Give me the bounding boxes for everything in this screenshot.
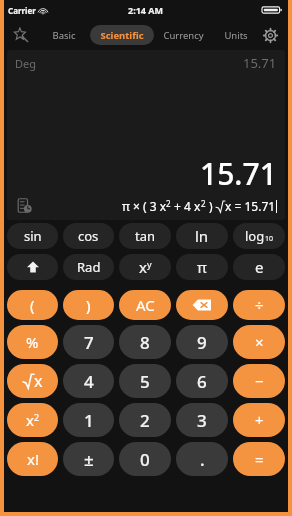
staticText: 2 [166,198,171,209]
staticText: 6 [197,370,207,393]
staticText: Currency [163,29,204,42]
button[interactable]: 1 [63,403,114,437]
button[interactable]: Shift [7,254,58,280]
button[interactable]: 8 [119,325,171,359]
button[interactable]: sin [7,223,58,249]
staticText: . [200,448,205,471]
staticText: x [26,410,34,430]
button[interactable]: Settings [258,23,282,47]
button[interactable]: x [7,403,58,437]
button[interactable]: AC [119,290,171,320]
staticText: 2 [34,411,40,423]
staticText: 1 [84,409,94,432]
button[interactable]: 7 [63,325,114,359]
button[interactable]: x! [7,442,58,476]
staticText: cos [78,227,99,245]
button[interactable]: ÷ [233,290,285,320]
staticText: 15.71 [243,54,277,72]
staticText: 10 [265,234,274,244]
button[interactable]: ln [176,223,228,249]
staticText: 5 [140,370,150,393]
button[interactable]: 0 [119,442,171,476]
button[interactable]: 6 [176,364,228,398]
button[interactable]: e [233,254,285,280]
staticText: ( [30,295,35,315]
button[interactable]: Magic [10,24,32,46]
button[interactable]: ) [63,290,114,320]
staticText: Carrier [8,5,36,16]
staticText: + 4 x [171,198,201,214]
button[interactable]: ( [7,290,58,320]
staticText: y [147,258,152,270]
staticText: ÷ [255,295,264,315]
button[interactable]: % [7,325,58,359]
staticText: 4 [84,370,94,393]
staticText: ) [206,198,216,214]
button[interactable]: × [233,325,285,359]
button[interactable]: + [233,403,285,437]
staticText: ln [195,226,209,246]
button[interactable]: cos [63,223,114,249]
button[interactable]: 5 [119,364,171,398]
button[interactable]: Scientific [90,25,154,45]
staticText: 0 [140,448,150,471]
staticText: Units [224,29,248,42]
staticText: e [255,257,264,277]
button[interactable]: Square root [7,364,58,398]
button[interactable]: Basic [40,25,88,45]
staticText: − [255,371,264,391]
staticText: Rad [77,258,101,276]
button[interactable]: 4 [63,364,114,398]
staticText: % [26,332,39,352]
staticText: x [34,370,43,392]
staticText: 2 [201,198,206,209]
button[interactable]: History [15,196,33,214]
staticText: 15.71 [200,153,277,194]
button[interactable]: − [233,364,285,398]
staticText: 2 [140,409,150,432]
staticText: π × ( 3 x [122,198,166,214]
staticText: = [255,449,264,469]
button[interactable]: 3 [176,403,228,437]
button[interactable]: log [233,223,285,249]
staticText: ± [84,448,94,471]
staticText: tan [135,227,156,245]
staticText: Scientific [100,29,144,42]
staticText: x [139,257,147,277]
button[interactable]: Backspace [176,290,228,320]
button[interactable]: x [119,254,171,280]
button[interactable]: Rad [63,254,114,280]
staticText: Deg [15,56,36,71]
staticText: 9 [197,331,207,354]
staticText: π [197,257,207,277]
staticText: log [245,227,265,245]
button[interactable]: π [176,254,228,280]
staticText: x! [27,449,39,469]
button[interactable]: = [233,442,285,476]
staticText: x = 15.71 [225,198,276,214]
staticText: × [255,332,264,352]
button[interactable]: Units [213,25,258,45]
button[interactable]: 2 [119,403,171,437]
staticText: 3 [197,409,207,432]
button[interactable]: ± [63,442,114,476]
staticText: sin [24,227,42,245]
button[interactable]: Currency [156,25,211,45]
staticText: 2:14 AM [128,4,164,16]
staticText: AC [136,295,155,315]
staticText: ) [86,295,91,315]
staticText: Basic [52,29,76,42]
button[interactable]: tan [119,223,171,249]
button[interactable]: 9 [176,325,228,359]
button[interactable]: . [176,442,228,476]
staticText: 8 [140,331,150,354]
staticText: 7 [84,331,94,354]
staticText: + [255,410,264,430]
